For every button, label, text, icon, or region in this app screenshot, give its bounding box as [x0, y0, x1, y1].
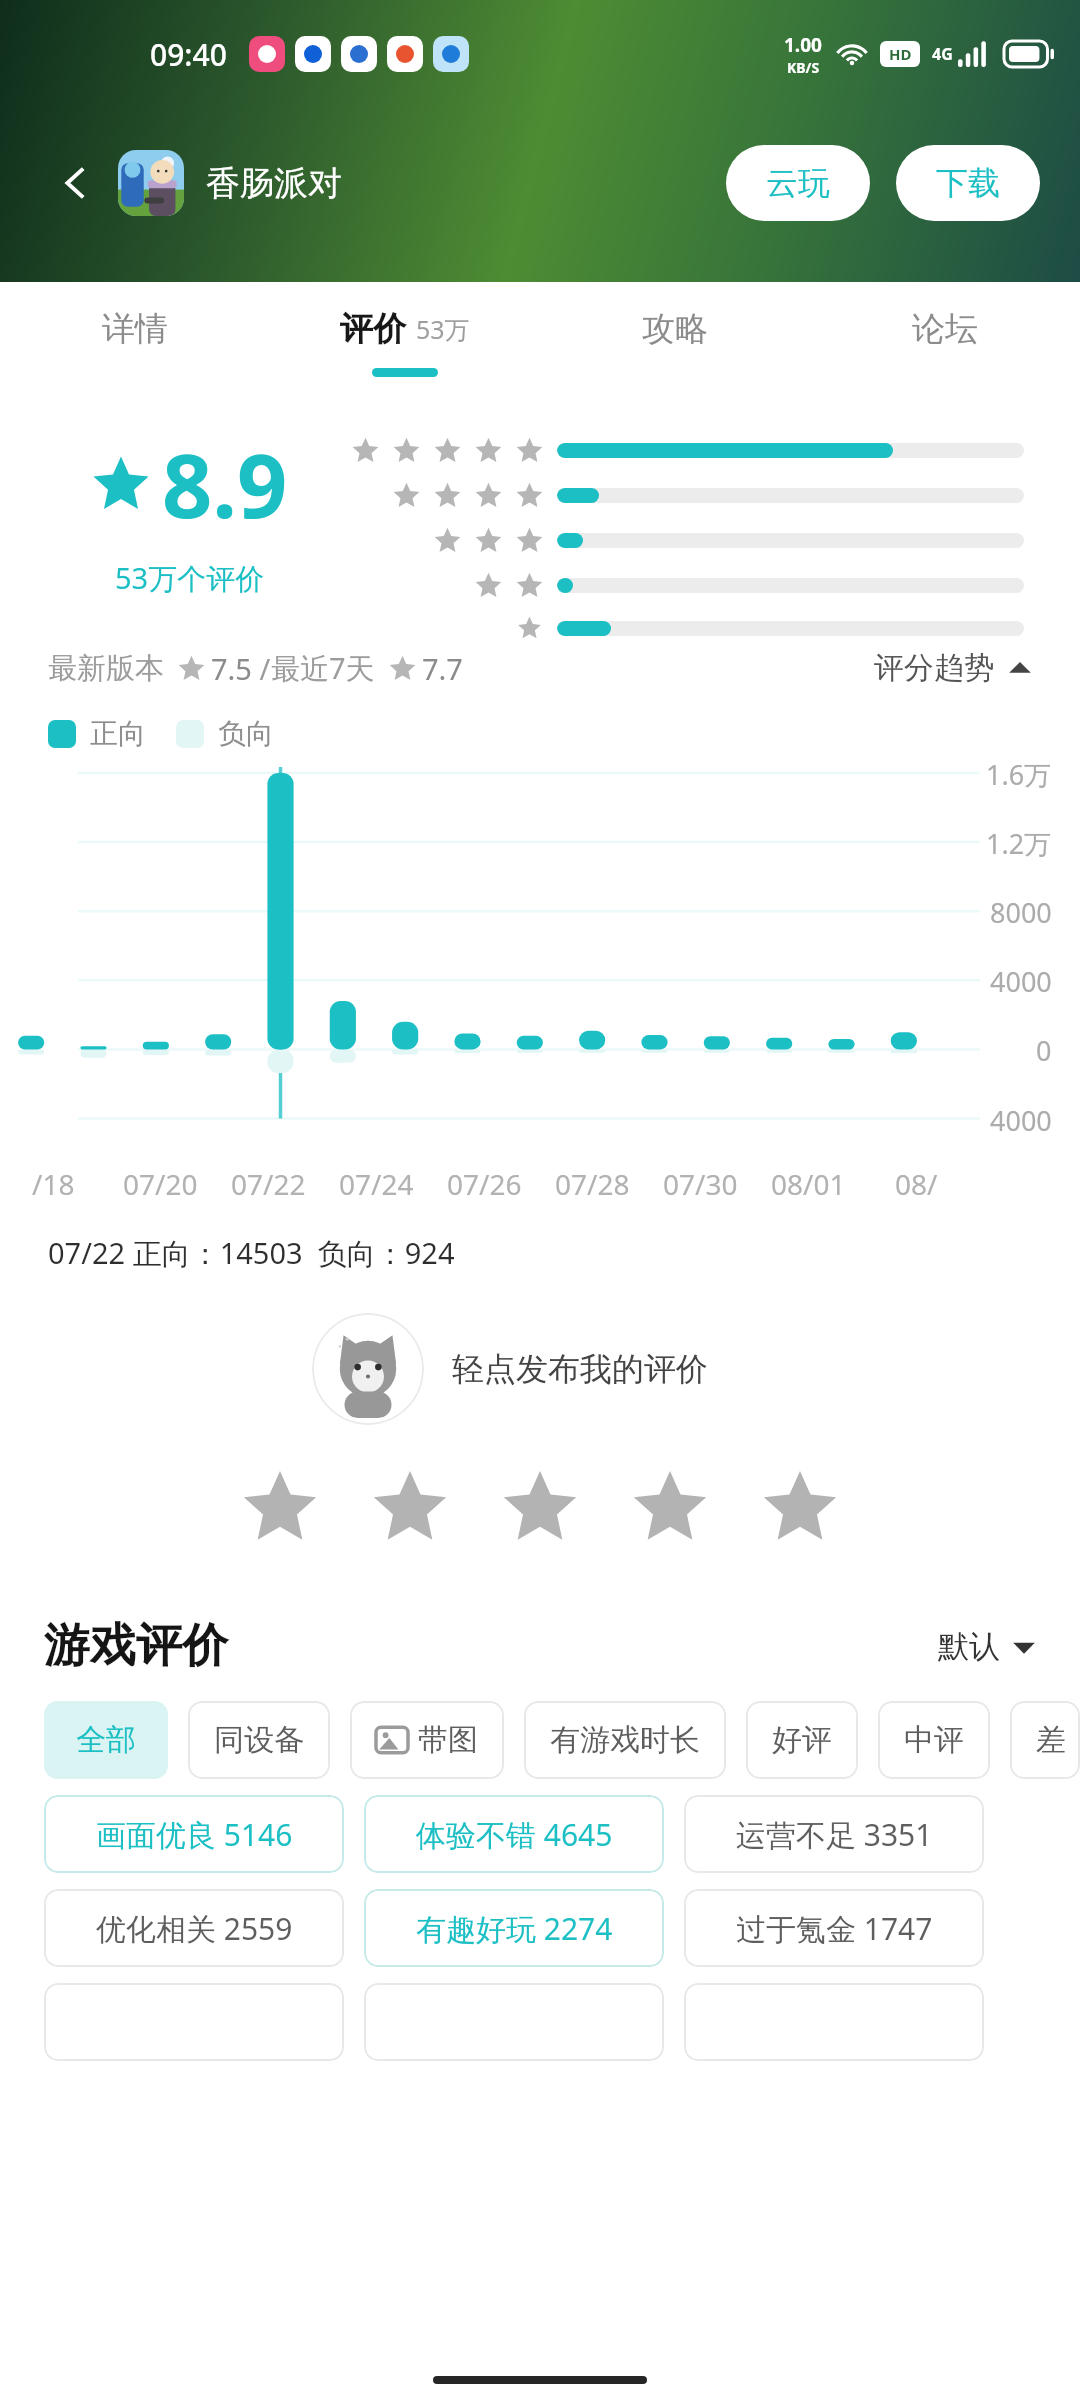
button[interactable]: 评分趋势	[874, 649, 1032, 687]
button[interactable]: 同设备	[188, 1701, 330, 1779]
staticText: /	[252, 649, 271, 688]
staticText: 正向	[90, 716, 146, 751]
button[interactable]: 轻点发布我的评价	[312, 1307, 1080, 1431]
staticText: 08/01	[771, 1165, 846, 1203]
staticText: 中评	[904, 1721, 964, 1759]
button[interactable]: 优化相关 2559	[44, 1889, 344, 1967]
button[interactable]: 下载	[896, 145, 1040, 221]
staticText: 全部	[76, 1721, 136, 1759]
staticText: 差	[1036, 1721, 1054, 1759]
staticText: 画面优良 5146	[96, 1814, 293, 1855]
button[interactable]: 画面优良 5146	[44, 1795, 344, 1873]
button[interactable]: Rate 1 stars	[232, 1459, 328, 1555]
button[interactable]	[684, 1983, 984, 2061]
staticText: 07/20	[123, 1165, 198, 1203]
staticText: 07/22	[231, 1165, 306, 1203]
staticText: 0	[1036, 1032, 1052, 1069]
staticText: 好评	[772, 1721, 832, 1759]
staticText: 优化相关 2559	[96, 1908, 293, 1949]
staticText: /18	[32, 1165, 75, 1203]
button[interactable]: 详情	[0, 282, 270, 400]
button[interactable]: Rate 4 stars	[622, 1459, 718, 1555]
staticText: 运营不足 3351	[736, 1814, 933, 1855]
button[interactable]: 差	[1010, 1701, 1080, 1779]
staticText: 最近7天	[271, 648, 375, 688]
staticText: 08/	[895, 1165, 938, 1203]
staticText: 论坛	[912, 308, 978, 350]
staticText: 07/24	[339, 1165, 414, 1203]
button[interactable]: 有趣好玩 2274	[364, 1889, 664, 1967]
button[interactable]: 中评	[878, 1701, 990, 1779]
staticText: 07/26	[447, 1165, 522, 1203]
staticText: 07/28	[555, 1165, 630, 1203]
staticText: 8000	[990, 894, 1052, 931]
staticText: 轻点发布我的评价	[452, 1349, 708, 1389]
staticText: 详情	[102, 308, 168, 350]
staticText: 攻略	[642, 308, 708, 350]
staticText: 游戏评价	[44, 1617, 228, 1675]
button[interactable]: 运营不足 3351	[684, 1795, 984, 1873]
staticText: 4G	[932, 43, 953, 65]
staticText: 09:40	[150, 34, 227, 75]
staticText: 默认	[938, 1627, 1000, 1666]
button[interactable]	[44, 1983, 344, 2061]
button[interactable]: Rate 5 stars	[752, 1459, 848, 1555]
button[interactable]: Rate 3 stars	[492, 1459, 588, 1555]
button[interactable]: 好评	[746, 1701, 858, 1779]
staticText: 香肠派对	[206, 162, 342, 205]
button[interactable]: Back	[46, 153, 106, 213]
staticText: 云玩	[766, 163, 830, 203]
staticText: 7.7	[422, 649, 463, 688]
staticText: 4000	[990, 1102, 1052, 1139]
staticText: 最新版本	[48, 650, 164, 687]
staticText: 带图	[418, 1721, 478, 1759]
button[interactable]: 默认	[938, 1627, 1036, 1666]
staticText: 07/22 正向：14503 负向：924	[48, 1233, 455, 1273]
staticText: 下载	[936, 163, 1000, 203]
staticText: KB/S	[787, 58, 820, 77]
button[interactable]: Rate 2 stars	[362, 1459, 458, 1555]
staticText: 有游戏时长	[550, 1721, 700, 1759]
staticText: HD	[889, 44, 912, 64]
staticText: 1.00	[784, 32, 822, 58]
staticText: 同设备	[214, 1721, 304, 1759]
staticText: 有趣好玩 2274	[416, 1908, 613, 1949]
button[interactable]: 过于氪金 1747	[684, 1889, 984, 1967]
staticText: 过于氪金 1747	[736, 1908, 933, 1949]
staticText: 8.9	[162, 424, 288, 544]
staticText: 1.6万	[986, 756, 1052, 793]
staticText: 53万	[416, 312, 470, 346]
staticText: 评分趋势	[874, 649, 994, 687]
button[interactable]: 有游戏时长	[524, 1701, 726, 1779]
staticText: 负向	[218, 716, 274, 751]
button[interactable]: 全部	[44, 1701, 168, 1779]
staticText: 评价	[340, 308, 406, 350]
button[interactable]: 评价	[270, 282, 540, 400]
button[interactable]: 论坛	[810, 282, 1080, 400]
button[interactable]: 攻略	[540, 282, 810, 400]
button[interactable]: 云玩	[726, 145, 870, 221]
staticText: 53万个评价	[115, 558, 265, 598]
button[interactable]: 体验不错 4645	[364, 1795, 664, 1873]
button[interactable]: 带图	[350, 1701, 504, 1779]
staticText: 体验不错 4645	[416, 1814, 613, 1855]
staticText: 7.5	[211, 649, 252, 688]
staticText: 1.2万	[986, 825, 1052, 862]
button[interactable]	[364, 1983, 664, 2061]
staticText: 07/30	[663, 1165, 738, 1203]
staticText: 4000	[990, 963, 1052, 1000]
